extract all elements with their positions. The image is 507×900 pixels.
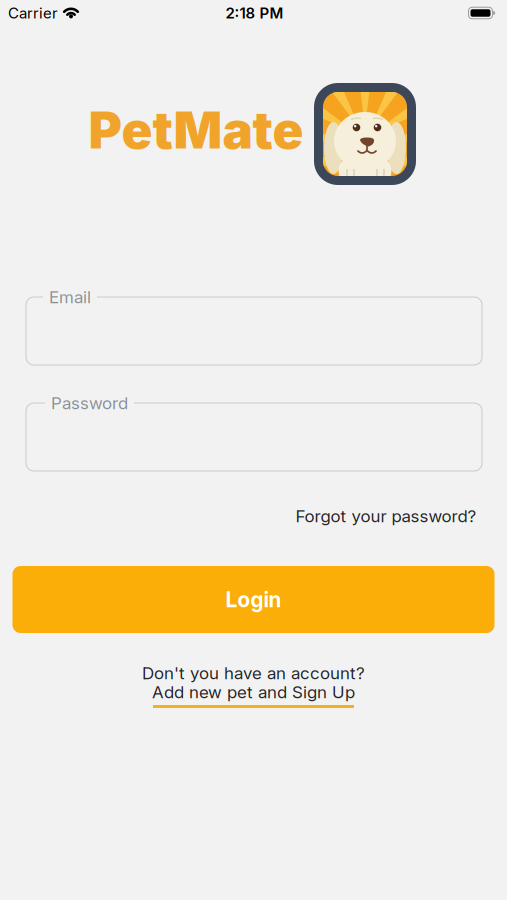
staticText: 2:18 PM bbox=[225, 4, 283, 22]
staticText: Don't you have an account? bbox=[142, 663, 365, 683]
staticText: Email bbox=[49, 287, 91, 307]
button[interactable]: Login bbox=[12, 566, 494, 633]
staticText: PetMate bbox=[88, 100, 303, 160]
button[interactable]: Add new pet and Sign Up bbox=[133, 679, 373, 709]
button[interactable]: Password bbox=[26, 403, 482, 471]
button[interactable]: Forgot your password? bbox=[295, 506, 476, 526]
button[interactable]: Email bbox=[26, 297, 482, 365]
staticText: Password bbox=[51, 393, 128, 413]
staticText: Forgot your password? bbox=[295, 506, 476, 526]
staticText: Add new pet and Sign Up bbox=[152, 682, 355, 702]
staticText: Carrier bbox=[8, 4, 58, 22]
staticText: Login bbox=[225, 587, 281, 612]
